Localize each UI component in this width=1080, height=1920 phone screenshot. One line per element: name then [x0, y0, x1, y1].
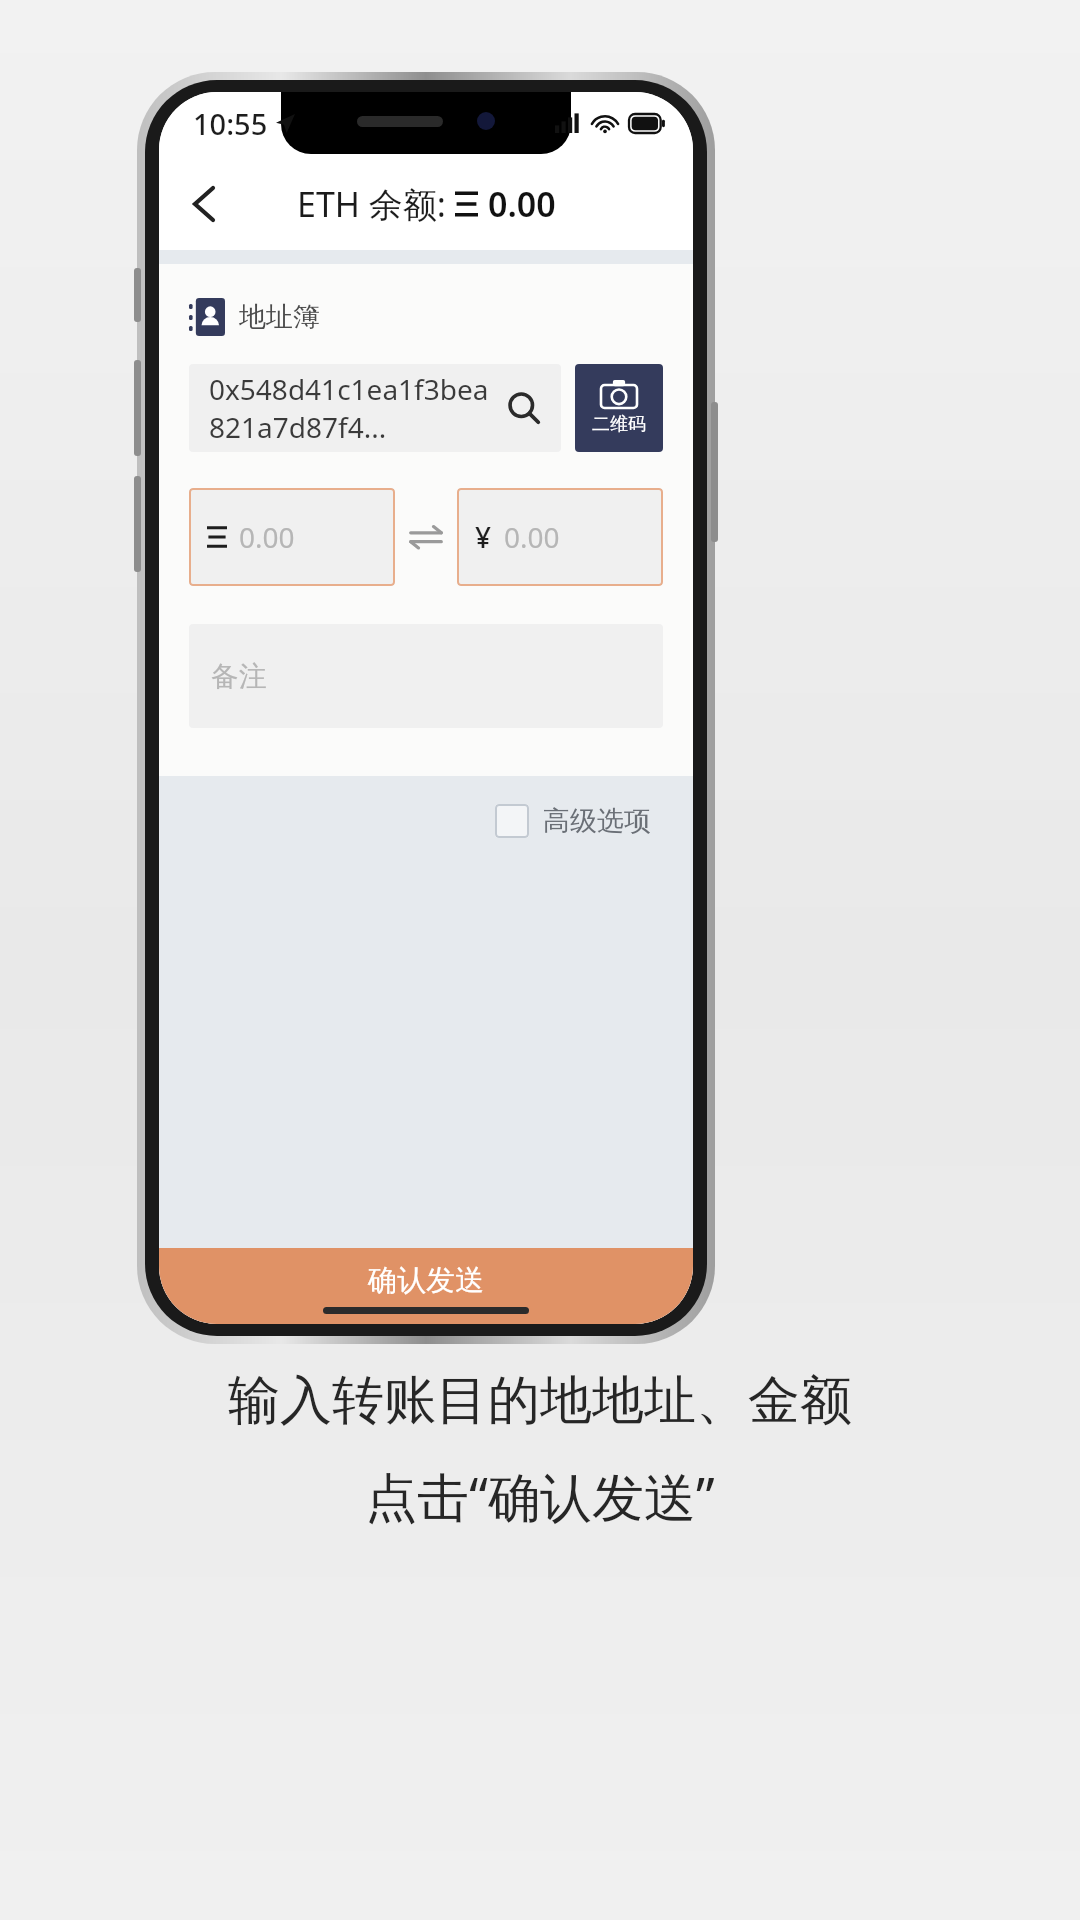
staticText: 地址簿: [239, 300, 320, 334]
staticText: 0x548d41c1ea1f3bea821a7d87f4...: [209, 370, 499, 446]
button[interactable]: 二维码: [575, 364, 663, 452]
staticText: 二维码: [592, 413, 646, 436]
button[interactable]: 0.00: [189, 488, 395, 586]
button[interactable]: Back: [173, 173, 235, 235]
button[interactable]: 0x548d41c1ea1f3bea821a7d87f4...: [189, 364, 561, 452]
button[interactable]: Swap currency: [395, 524, 457, 550]
staticText: ETH 余额:: [297, 181, 455, 227]
staticText: 0.00: [239, 518, 295, 556]
staticText: ¥: [475, 518, 492, 556]
staticText: 0.00: [488, 181, 556, 227]
button[interactable]: ¥: [457, 488, 663, 586]
staticText: 高级选项: [543, 804, 651, 838]
staticText: 备注: [211, 659, 267, 694]
button[interactable]: 备注: [189, 624, 663, 728]
staticText: 点击“确认发送”: [365, 1460, 715, 1531]
button[interactable]: 高级选项: [489, 798, 657, 844]
staticText: 输入转账目的地地址、金额: [228, 1368, 852, 1434]
button[interactable]: 地址簿: [189, 294, 320, 340]
staticText: 10:55: [193, 104, 268, 143]
staticText: 0.00: [504, 518, 560, 556]
staticText: 确认发送: [368, 1262, 484, 1299]
other: Search: [507, 391, 541, 425]
button[interactable]: 确认发送: [159, 1248, 693, 1324]
